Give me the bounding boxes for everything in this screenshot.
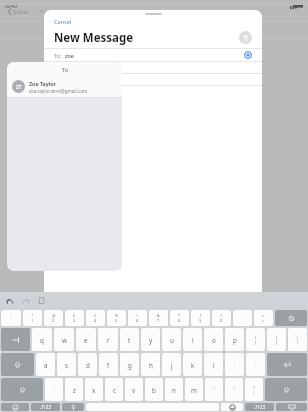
button[interactable]: _ bbox=[233, 310, 252, 326]
button[interactable]: ~ bbox=[45, 378, 63, 401]
staticText: + bbox=[262, 313, 265, 318]
staticText: u bbox=[170, 336, 174, 344]
staticText: | bbox=[296, 335, 299, 340]
staticText: ` bbox=[53, 390, 55, 395]
button[interactable]: * bbox=[170, 310, 189, 326]
staticText: 1 bbox=[31, 318, 34, 323]
button[interactable]: x bbox=[85, 378, 103, 401]
button[interactable]: { bbox=[246, 328, 265, 351]
staticText: 2 bbox=[52, 318, 55, 323]
button[interactable]: j bbox=[162, 353, 181, 376]
staticText: 7 bbox=[157, 318, 160, 323]
button[interactable]: u bbox=[162, 328, 181, 351]
button[interactable]: o bbox=[204, 328, 223, 351]
button[interactable]: Send bbox=[239, 31, 252, 44]
button[interactable]: Emoji picker bbox=[221, 403, 243, 411]
staticText: q bbox=[40, 336, 44, 344]
button[interactable]: Dictate bbox=[62, 403, 84, 411]
button[interactable]: ? bbox=[245, 378, 263, 401]
staticText: @ bbox=[52, 313, 56, 318]
button[interactable]: d bbox=[78, 353, 97, 376]
button[interactable]: Previous bbox=[38, 8, 45, 15]
button[interactable]: ¢ bbox=[86, 310, 105, 326]
button[interactable]: l bbox=[204, 353, 223, 376]
button[interactable]: ^ bbox=[128, 310, 147, 326]
button[interactable]: Next bbox=[53, 8, 60, 15]
button[interactable]: : bbox=[225, 353, 244, 376]
button[interactable]: Backspace bbox=[275, 310, 307, 326]
button[interactable]: f bbox=[99, 353, 118, 376]
button[interactable]: q bbox=[32, 328, 52, 351]
button[interactable]: > bbox=[225, 378, 243, 401]
button[interactable]: Add contact bbox=[244, 51, 252, 59]
button[interactable]: y bbox=[141, 328, 160, 351]
button[interactable]: v bbox=[125, 378, 143, 401]
staticText: % bbox=[115, 313, 119, 318]
button[interactable]: ~ bbox=[1, 310, 21, 326]
button[interactable]: } bbox=[267, 328, 286, 351]
button[interactable]: Caps lock bbox=[1, 353, 34, 376]
button[interactable]: Delete bbox=[258, 7, 267, 16]
staticText: 8 bbox=[178, 318, 181, 323]
button[interactable]: .?123 bbox=[31, 403, 60, 411]
staticText: - bbox=[242, 318, 244, 323]
button[interactable]: Emoji bbox=[1, 403, 29, 411]
button[interactable]: Compose bbox=[294, 7, 303, 16]
button[interactable]: ( bbox=[191, 310, 210, 326]
button[interactable]: " bbox=[246, 353, 265, 376]
button[interactable]: ) bbox=[212, 310, 231, 326]
button[interactable]: Inbox bbox=[5, 6, 30, 17]
button[interactable]: z bbox=[65, 378, 83, 401]
button[interactable]: | bbox=[288, 328, 307, 351]
staticText: 10:40 bbox=[4, 3, 17, 10]
button[interactable]: r bbox=[98, 328, 118, 351]
button[interactable]: £ bbox=[65, 310, 84, 326]
button[interactable]: Cancel bbox=[44, 17, 82, 27]
button[interactable]: Undo bbox=[6, 297, 14, 305]
button[interactable]: g bbox=[120, 353, 139, 376]
button[interactable]: n bbox=[165, 378, 183, 401]
button[interactable]: c bbox=[105, 378, 123, 401]
button[interactable]: < bbox=[205, 378, 223, 401]
button[interactable]: w bbox=[54, 328, 74, 351]
button[interactable]: % bbox=[107, 310, 126, 326]
button[interactable]: @ bbox=[44, 310, 63, 326]
button[interactable]: s bbox=[57, 353, 76, 376]
button[interactable]: .?123 bbox=[245, 403, 274, 411]
button[interactable]: Paste bbox=[38, 297, 45, 304]
button[interactable]: m bbox=[185, 378, 203, 401]
button[interactable]: Hide keyboard bbox=[276, 403, 307, 411]
staticText: m bbox=[191, 386, 197, 394]
button[interactable]: b bbox=[145, 378, 163, 401]
button[interactable]: ZT bbox=[7, 76, 122, 97]
staticText: , bbox=[213, 390, 215, 395]
button[interactable]: + bbox=[254, 310, 273, 326]
button[interactable]: ! bbox=[23, 310, 42, 326]
staticText: zoe.taylor.wrm@gmail.com bbox=[29, 88, 88, 94]
staticText: h bbox=[149, 361, 153, 369]
button[interactable]: i bbox=[183, 328, 202, 351]
staticText: * bbox=[178, 313, 181, 318]
staticText: New Message bbox=[54, 30, 134, 46]
staticText: ? bbox=[253, 385, 255, 390]
staticText: ZT bbox=[16, 84, 22, 90]
button[interactable]: a bbox=[36, 353, 55, 376]
button[interactable]: p bbox=[225, 328, 244, 351]
button[interactable]: Shift bbox=[265, 378, 307, 401]
button[interactable]: & bbox=[149, 310, 168, 326]
button[interactable]: Return bbox=[267, 353, 307, 376]
button[interactable]: Redo bbox=[22, 297, 30, 305]
staticText: ) bbox=[221, 313, 223, 318]
staticText: ' bbox=[255, 365, 256, 370]
button[interactable]: k bbox=[183, 353, 202, 376]
staticText: £ bbox=[73, 313, 76, 318]
button[interactable]: h bbox=[141, 353, 160, 376]
button[interactable]: Shift bbox=[1, 378, 43, 401]
button[interactable]: Tab bbox=[1, 328, 30, 351]
button[interactable]: e bbox=[76, 328, 96, 351]
staticText: _ bbox=[242, 313, 244, 318]
staticText: x bbox=[92, 386, 96, 394]
button[interactable]: t bbox=[120, 328, 139, 351]
